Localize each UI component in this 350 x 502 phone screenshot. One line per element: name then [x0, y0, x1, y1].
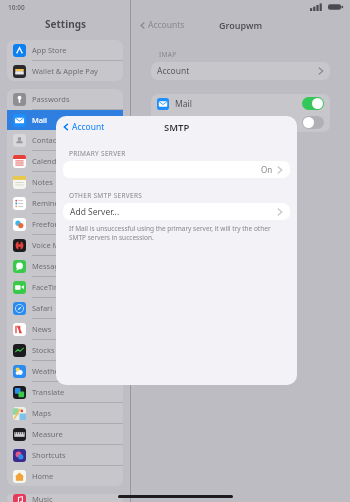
button[interactable]: Passwords [7, 89, 123, 109]
button[interactable]: Toggle [302, 97, 324, 110]
staticText: Weather [32, 366, 62, 376]
staticText: SMTP [164, 121, 190, 134]
staticText: Account [157, 65, 190, 77]
button[interactable]: Contacts [7, 130, 123, 150]
staticText: OTHER SMTP SERVERS [69, 191, 143, 200]
button[interactable]: Messages [7, 256, 123, 276]
button[interactable]: On [63, 161, 290, 178]
button[interactable]: Account [151, 62, 330, 80]
staticText: FaceTime [32, 282, 66, 292]
staticText: Notes [175, 117, 199, 129]
button[interactable]: Voice Memos [7, 235, 123, 255]
staticText: App Store [32, 45, 67, 55]
staticText: News [32, 324, 52, 334]
staticText: Mail [32, 115, 47, 125]
button[interactable]: Translate [7, 382, 123, 402]
button[interactable]: Mail [151, 94, 330, 113]
button[interactable]: Notes [151, 113, 330, 132]
button[interactable]: Reminders [7, 193, 123, 213]
button[interactable]: Shortcuts [7, 445, 123, 465]
button[interactable]: Calendar [7, 151, 123, 171]
button[interactable]: Music [7, 494, 123, 502]
staticText: Accounts [148, 19, 185, 31]
button[interactable]: Stocks [7, 340, 123, 360]
staticText: Add Server... [70, 206, 120, 218]
staticText: Translate [32, 387, 65, 397]
staticText: Safari [32, 303, 53, 313]
button[interactable]: Measure [7, 424, 123, 444]
button[interactable]: Weather [7, 361, 123, 381]
staticText: Reminders [32, 198, 71, 208]
staticText: Contacts [32, 135, 63, 145]
button[interactable]: Freeform [7, 214, 123, 234]
button[interactable]: Safari [7, 298, 123, 318]
button[interactable]: Wallet & Apple Pay [7, 61, 123, 81]
staticText: Calendar [32, 156, 64, 166]
button[interactable]: Mail [7, 110, 123, 130]
button[interactable]: Home [7, 466, 123, 486]
button[interactable]: Account [62, 121, 105, 133]
staticText: Voice Memos [32, 240, 79, 250]
button[interactable]: News [7, 319, 123, 339]
staticText: On [261, 164, 273, 175]
staticText: Passwords [32, 94, 70, 104]
staticText: Shortcuts [32, 450, 66, 460]
staticText: Wallet & Apple Pay [32, 66, 98, 76]
staticText: Stocks [32, 345, 55, 355]
button[interactable]: App Store [7, 40, 123, 60]
staticText: Groupwm [219, 19, 263, 31]
staticText: Messages [32, 261, 67, 271]
button[interactable]: Toggle [302, 116, 324, 129]
staticText: IMAP [159, 50, 177, 59]
staticText: If Mail is unsuccessful using the primar… [69, 224, 284, 242]
button[interactable]: Notes [7, 172, 123, 192]
staticText: Notes [32, 177, 53, 187]
staticText: Maps [32, 408, 52, 418]
button[interactable]: FaceTime [7, 277, 123, 297]
staticText: Account [72, 121, 105, 133]
staticText: Home [32, 471, 54, 481]
staticText: Mail [175, 98, 192, 110]
button[interactable]: Add Server... [63, 203, 290, 220]
staticText: Measure [32, 429, 63, 439]
staticText: Music [32, 494, 53, 502]
staticText: Settings [45, 17, 86, 31]
staticText: 10:00 [8, 3, 25, 12]
staticText: PRIMARY SERVER [69, 149, 126, 158]
button[interactable]: Maps [7, 403, 123, 423]
staticText: Freeform [32, 219, 65, 229]
button[interactable]: Accounts [139, 19, 185, 31]
